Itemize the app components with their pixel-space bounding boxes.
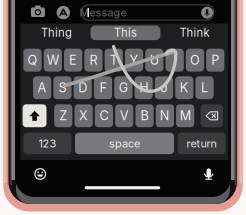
- button[interactable]: F: [94, 76, 112, 99]
- staticText: H: [139, 80, 148, 95]
- button[interactable]: B: [135, 104, 154, 127]
- staticText: M: [180, 108, 191, 123]
- button[interactable]: L: [195, 76, 214, 99]
- button[interactable]: C: [95, 104, 113, 127]
- button[interactable]: Dictate: [198, 163, 220, 185]
- button[interactable]: 123: [23, 133, 71, 154]
- staticText: U: [150, 52, 159, 68]
- staticText: B: [140, 108, 148, 123]
- staticText: K: [180, 80, 189, 95]
- staticText: P: [211, 52, 219, 68]
- staticText: A: [38, 80, 47, 95]
- staticText: Think: [179, 26, 209, 39]
- button[interactable]: G: [114, 76, 132, 99]
- button[interactable]: K: [175, 76, 193, 99]
- button[interactable]: Q: [23, 49, 42, 72]
- button[interactable]: Record audio message: [200, 5, 214, 19]
- staticText: T: [110, 52, 118, 68]
- staticText: J: [160, 80, 167, 95]
- staticText: C: [99, 108, 108, 123]
- button[interactable]: S: [53, 76, 71, 99]
- staticText: L: [201, 80, 208, 95]
- button[interactable]: [23, 104, 46, 127]
- button[interactable]: Think: [160, 25, 228, 40]
- staticText: R: [89, 52, 97, 68]
- staticText: This: [114, 26, 137, 40]
- button[interactable]: D: [74, 76, 92, 99]
- button[interactable]: Thing: [22, 25, 90, 40]
- button[interactable]: U: [145, 49, 163, 72]
- button[interactable]: E: [64, 49, 82, 72]
- staticText: return: [186, 137, 216, 150]
- button[interactable]: P: [206, 49, 224, 72]
- button[interactable]: M: [176, 104, 194, 127]
- button[interactable]: O: [186, 49, 204, 72]
- staticText: I: [173, 52, 176, 68]
- staticText: V: [120, 108, 129, 123]
- button[interactable]: space: [75, 133, 174, 154]
- button[interactable]: A: [33, 76, 51, 99]
- staticText: O: [190, 52, 200, 68]
- button[interactable]: T: [105, 49, 123, 72]
- button[interactable]: N: [156, 104, 174, 127]
- staticText: Y: [129, 52, 138, 68]
- staticText: X: [79, 108, 88, 123]
- staticText: Message: [79, 6, 126, 19]
- staticText: Z: [59, 108, 67, 123]
- button[interactable]: return: [178, 133, 225, 154]
- staticText: N: [160, 108, 170, 123]
- button[interactable]: Y: [125, 49, 143, 72]
- button[interactable]: R: [84, 49, 102, 72]
- button[interactable]: Message field: [82, 4, 214, 20]
- button[interactable]: W: [44, 49, 62, 72]
- button[interactable]: I: [166, 49, 184, 72]
- staticText: Thing: [41, 26, 72, 39]
- button[interactable]: Emoji: [29, 163, 51, 185]
- button[interactable]: J: [155, 76, 173, 99]
- button[interactable]: Z: [54, 104, 72, 127]
- button[interactable]: This: [91, 25, 160, 40]
- staticText: D: [78, 80, 87, 95]
- staticText: S: [58, 80, 66, 95]
- staticText: 123: [38, 137, 56, 150]
- staticText: space: [109, 137, 140, 150]
- button[interactable]: [201, 104, 223, 127]
- staticText: E: [69, 52, 77, 68]
- staticText: G: [119, 80, 128, 95]
- button[interactable]: V: [115, 104, 133, 127]
- button[interactable]: Apps: [54, 4, 72, 22]
- button[interactable]: H: [135, 76, 153, 99]
- button[interactable]: X: [74, 104, 93, 127]
- staticText: W: [47, 52, 59, 68]
- button[interactable]: Camera: [28, 2, 48, 22]
- staticText: Q: [27, 52, 37, 68]
- staticText: F: [99, 80, 106, 95]
